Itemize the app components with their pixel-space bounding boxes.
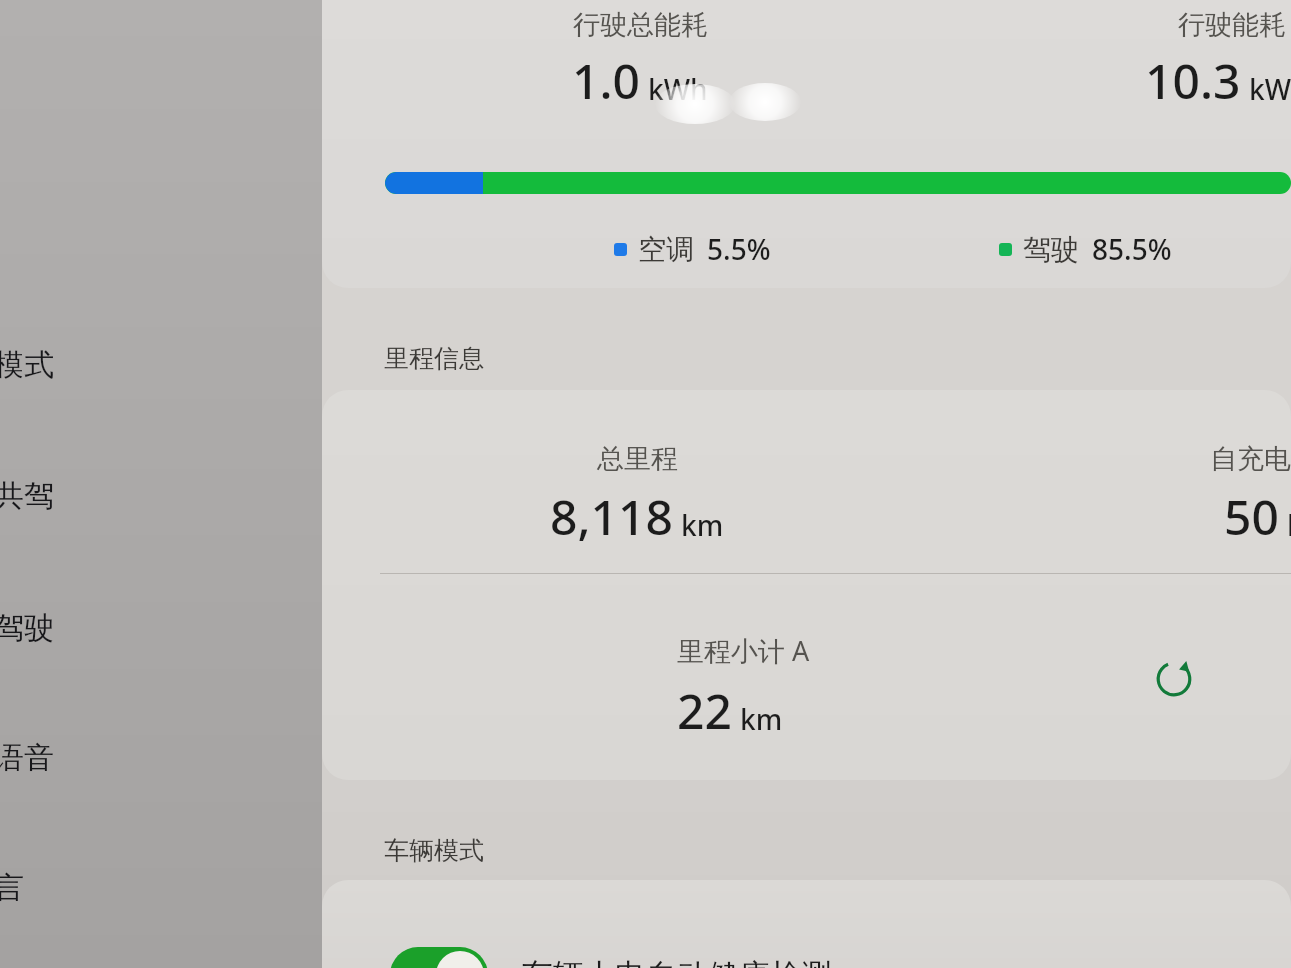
staticText: 模式 (0, 346, 54, 384)
staticText: 自充电后行 (1210, 442, 1291, 476)
button[interactable]: 驾驶 (0, 600, 140, 656)
staticText: 22 (677, 678, 732, 743)
staticText: 语音 (0, 739, 54, 777)
staticText: 里程信息 (384, 343, 484, 374)
staticText: km (681, 506, 724, 544)
button[interactable]: 重置里程小计 Reset trip meter (1147, 652, 1201, 706)
staticText: 言 (0, 869, 24, 907)
staticText: 空调 (638, 232, 694, 267)
button[interactable]: 里程小计 A (322, 574, 1291, 780)
button[interactable]: 车辆上电自动健康检测 (322, 920, 1291, 968)
staticText: 1.0 (572, 48, 640, 113)
button[interactable]: 模式 (0, 337, 140, 393)
staticText: kWh (648, 70, 708, 108)
staticText: 8,118 (550, 484, 673, 549)
staticText: 总里程 (597, 442, 678, 476)
staticText: km (1287, 506, 1291, 544)
staticText: 85.5% (1092, 230, 1172, 268)
staticText: 共驾 (0, 477, 54, 515)
staticText: 50 (1224, 484, 1279, 549)
staticText: 行驶能耗 (1178, 8, 1286, 42)
staticText: 车辆模式 (384, 835, 484, 866)
staticText: 5.5% (707, 230, 771, 268)
staticText: 10.3 (1145, 48, 1241, 113)
staticText: 驾驶 (0, 609, 54, 647)
staticText: 车辆上电自动健康检测 (522, 956, 832, 968)
button[interactable]: 行驶总能耗 (322, 0, 1291, 288)
staticText: km (740, 700, 783, 738)
button[interactable]: 空调 (614, 227, 771, 271)
button[interactable]: 总里程 (322, 390, 1291, 573)
button[interactable]: 言 (0, 860, 140, 916)
staticText: 里程小计 A (677, 632, 810, 669)
staticText: 行驶总能耗 (573, 8, 708, 42)
button[interactable]: 驾驶 (999, 227, 1172, 271)
button[interactable]: 共驾 (0, 468, 140, 524)
staticText: kWh/ (1249, 70, 1291, 108)
button[interactable]: 语音 (0, 730, 140, 786)
staticText: 驾驶 (1023, 232, 1079, 267)
